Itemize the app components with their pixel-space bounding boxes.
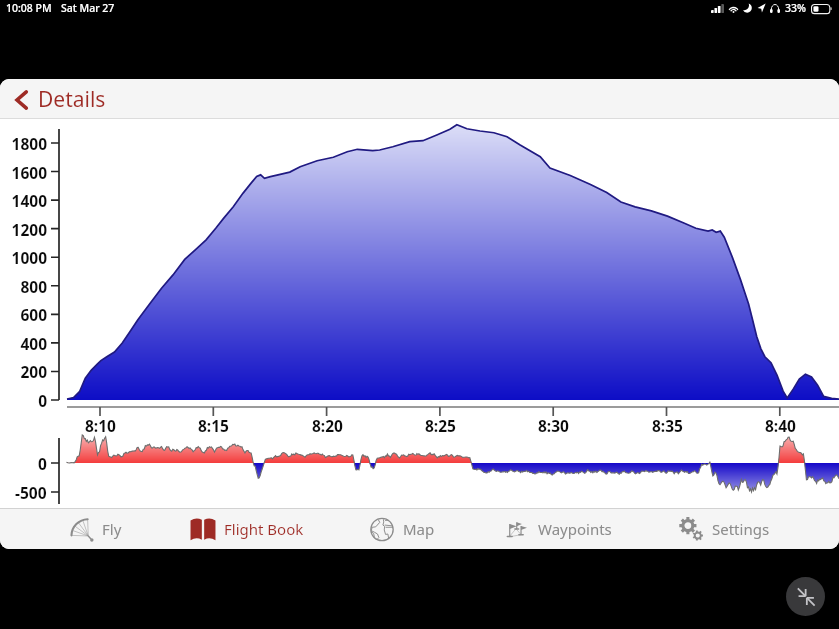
staticText: 8:30 — [538, 415, 569, 436]
staticText: 1800 — [11, 133, 47, 154]
button[interactable]: Collapse — [786, 577, 825, 616]
staticText: 1600 — [11, 162, 47, 183]
staticText: Map — [403, 519, 435, 539]
button[interactable]: Flight Book — [172, 509, 321, 549]
staticText: 8:40 — [765, 415, 796, 436]
staticText: Fly — [102, 519, 122, 539]
staticText: 800 — [20, 276, 47, 297]
staticText: Sat Mar 27 — [61, 1, 115, 15]
button[interactable]: Settings — [660, 509, 787, 549]
staticText: 8:20 — [312, 415, 343, 436]
staticText: Details — [38, 85, 106, 114]
staticText: 400 — [20, 333, 47, 354]
button[interactable]: Fly — [53, 509, 139, 549]
staticText: 1200 — [11, 219, 47, 240]
staticText: -500 — [15, 482, 47, 503]
staticText: Flight Book — [224, 519, 304, 539]
staticText: 8:35 — [652, 415, 683, 436]
staticText: 0 — [38, 453, 47, 474]
other: Back — [14, 88, 29, 112]
staticText: 8:10 — [85, 415, 116, 436]
staticText: 1000 — [11, 247, 47, 268]
staticText: 10:08 PM — [6, 1, 52, 15]
staticText: 8:15 — [198, 415, 229, 436]
staticText: 8:25 — [425, 415, 456, 436]
button[interactable]: Back — [8, 82, 114, 117]
staticText: Waypoints — [538, 519, 612, 539]
staticText: 33% — [785, 1, 806, 15]
staticText: 200 — [20, 361, 47, 382]
staticText: 1400 — [11, 190, 47, 211]
staticText: 0 — [38, 390, 47, 411]
button[interactable]: Waypoints — [486, 509, 629, 549]
button[interactable]: Map — [350, 509, 454, 549]
staticText: 600 — [20, 304, 47, 325]
staticText: Settings — [712, 519, 770, 539]
